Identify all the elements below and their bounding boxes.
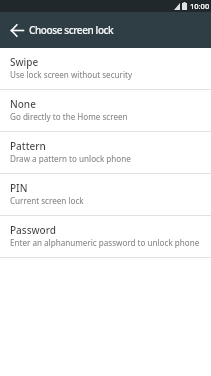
- button[interactable]: Swipe: [0, 48, 211, 89]
- staticText: PIN: [10, 181, 28, 195]
- button[interactable]: Pattern: [0, 132, 211, 173]
- staticText: Pattern: [10, 139, 46, 153]
- staticText: Password: [10, 223, 56, 237]
- staticText: Swipe: [10, 55, 39, 69]
- staticText: Go directly to the Home screen: [10, 111, 128, 122]
- staticText: Choose screen lock: [29, 23, 114, 37]
- staticText: 10:00: [190, 1, 210, 11]
- staticText: Enter an alphanumeric password to unlock…: [10, 237, 200, 248]
- button[interactable]: PIN: [0, 174, 211, 215]
- button[interactable]: None: [0, 90, 211, 131]
- staticText: Draw a pattern to unlock phone: [10, 153, 131, 164]
- staticText: None: [10, 97, 36, 111]
- button[interactable]: Password: [0, 216, 211, 257]
- button[interactable]: [0, 12, 29, 48]
- staticText: Use lock screen without security: [10, 69, 133, 80]
- staticText: Current screen lock: [10, 195, 84, 206]
